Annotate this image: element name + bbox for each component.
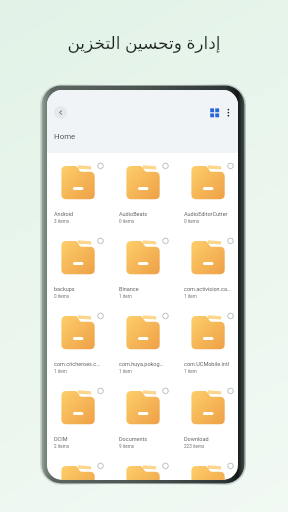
button[interactable]: More options [223, 105, 234, 119]
staticText: com.huya.pokog… [119, 361, 173, 367]
staticText: 1 item [184, 369, 197, 374]
button[interactable]: Android [54, 164, 112, 236]
button[interactable]: com.activision.ca… [184, 239, 238, 311]
staticText: 3 items [54, 219, 70, 224]
staticText: 1 item [119, 294, 132, 299]
staticText: 223 items [184, 444, 205, 449]
staticText: 1 item [184, 294, 197, 299]
staticText: 0 items [119, 219, 135, 224]
staticText: Documents [119, 436, 173, 442]
staticText: backups [54, 286, 108, 292]
button[interactable]: Grid view [207, 105, 221, 119]
staticText: Android [54, 211, 108, 217]
staticText: 0 items [184, 219, 200, 224]
staticText: Download [184, 436, 238, 442]
staticText: 2 items [54, 444, 70, 449]
button[interactable]: Music [119, 464, 177, 480]
button[interactable]: DCIM [54, 389, 112, 461]
staticText: AudioEditorCutter [184, 211, 238, 217]
button[interactable]: AudioEditorCutter [184, 164, 238, 236]
button[interactable]: Back [54, 106, 67, 119]
button[interactable]: com.UCMobile.intl [184, 314, 238, 386]
button[interactable]: com.cricheroes.c… [54, 314, 112, 386]
staticText: 1 item [119, 369, 132, 374]
staticText: AudioBeats [119, 211, 173, 217]
button[interactable]: Download [184, 389, 238, 461]
staticText: Binance [119, 286, 173, 292]
button[interactable]: Binance [119, 239, 177, 311]
button[interactable]: Pictures [184, 464, 238, 480]
staticText: com.activision.ca… [184, 286, 238, 292]
staticText: 1 item [54, 369, 67, 374]
staticText: 0 items [54, 294, 70, 299]
staticText: 9 items [119, 444, 135, 449]
button[interactable]: Documents [119, 389, 177, 461]
staticText: إدارة وتحسين التخزين [0, 31, 288, 54]
button[interactable]: com.huya.pokog… [119, 314, 177, 386]
button[interactable]: Movies [54, 464, 112, 480]
button[interactable]: backups [54, 239, 112, 311]
button[interactable]: AudioBeats [119, 164, 177, 236]
staticText: Home [54, 132, 76, 141]
staticText: com.UCMobile.intl [184, 361, 238, 367]
staticText: com.cricheroes.c… [54, 361, 108, 367]
staticText: DCIM [54, 436, 108, 442]
